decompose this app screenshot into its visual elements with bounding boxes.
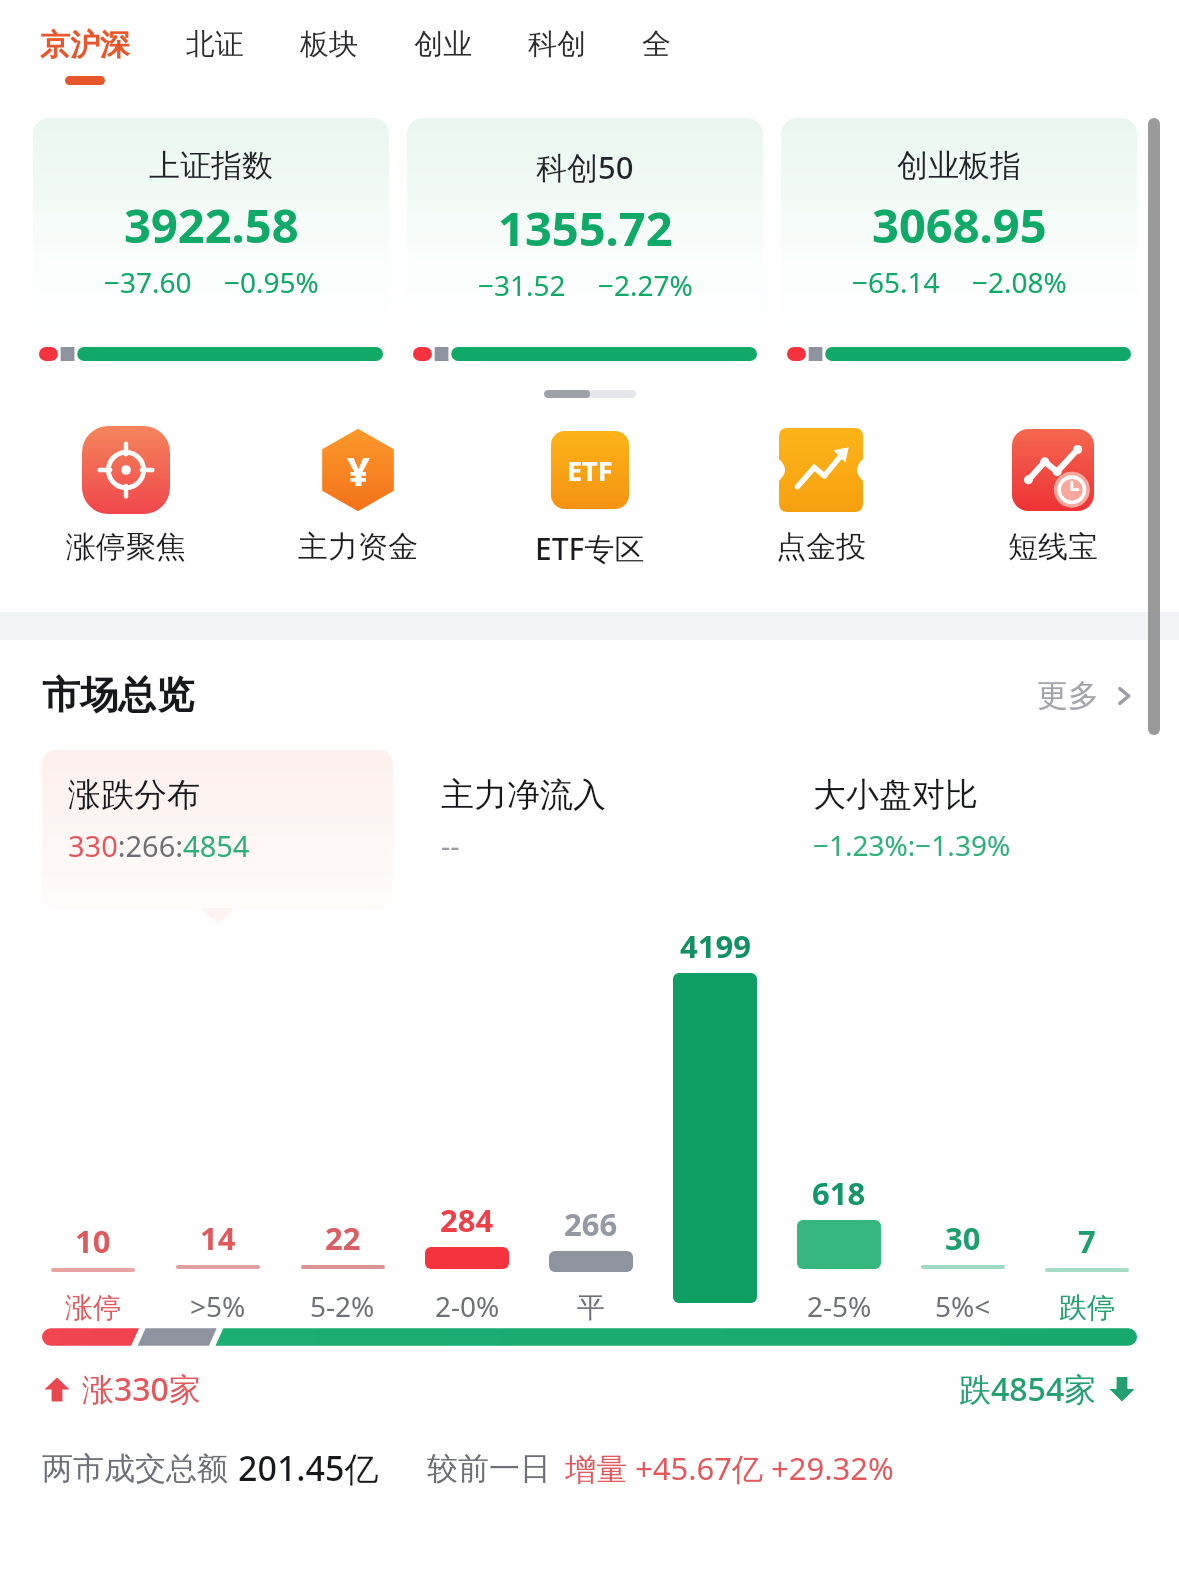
button[interactable]: 创业: [408, 0, 478, 75]
staticText: --: [441, 826, 460, 865]
staticText: 京沪深: [40, 26, 130, 64]
button[interactable]: 点金投: [721, 412, 921, 566]
button[interactable]: 板块: [294, 0, 364, 75]
button[interactable]: ETF专区: [490, 412, 690, 569]
staticText: 上证指数: [149, 146, 273, 185]
staticText: 跌4854家: [959, 1367, 1097, 1411]
staticText: ETF: [567, 452, 613, 489]
staticText: 主力净流入: [441, 774, 606, 816]
staticText: 主力资金: [298, 528, 418, 566]
staticText: 点金投: [776, 528, 866, 566]
staticText: 涨停: [65, 1290, 121, 1325]
staticText: 北证: [186, 26, 244, 63]
staticText: 30: [945, 1217, 981, 1259]
staticText: −2.08%: [972, 263, 1067, 301]
staticText: 增量 +45.67亿 +29.32%: [565, 1447, 894, 1489]
staticText: 跌停: [1059, 1290, 1115, 1325]
button[interactable]: 涨停聚焦: [26, 412, 226, 566]
other: 点金投: [779, 428, 863, 512]
button[interactable]: 京沪深: [34, 0, 136, 85]
button[interactable]: 北证: [180, 0, 250, 75]
staticText: −2.27%: [598, 266, 693, 304]
button[interactable]: 大小盘对比: [787, 750, 1137, 910]
button[interactable]: 创业板指: [781, 118, 1137, 378]
staticText: 大小盘对比: [813, 774, 978, 816]
button[interactable]: 主力资金: [258, 412, 458, 566]
button[interactable]: 主力净流入: [415, 750, 765, 910]
staticText: 5-2%: [310, 1287, 375, 1325]
staticText: 5%<: [935, 1287, 991, 1325]
staticText: ETF专区: [535, 528, 645, 569]
staticText: 创业: [414, 26, 472, 63]
button[interactable]: 上证指数: [33, 118, 389, 378]
staticText: 科创50: [536, 146, 634, 188]
staticText: 更多: [1037, 676, 1099, 715]
staticText: 2-5%: [807, 1287, 872, 1325]
staticText: −31.52: [478, 266, 566, 304]
staticText: −65.14: [852, 263, 940, 301]
staticText: 两市成交总额: [42, 1449, 228, 1488]
staticText: 14: [200, 1217, 236, 1259]
staticText: 涨330家: [82, 1367, 201, 1411]
staticText: 284: [440, 1199, 494, 1241]
staticText: >5%: [190, 1287, 246, 1325]
other: ETF专区: [551, 431, 629, 509]
button[interactable]: 涨跌分布: [42, 750, 393, 910]
staticText: 330:266:4854: [68, 826, 250, 865]
staticText: 618: [812, 1172, 866, 1214]
button[interactable]: 科创: [522, 0, 592, 75]
staticText: 平: [577, 1290, 605, 1325]
button[interactable]: 全: [636, 0, 677, 75]
staticText: 科创: [528, 26, 586, 63]
other: 主力资金: [314, 426, 402, 514]
staticText: 全: [642, 26, 671, 63]
staticText: 板块: [300, 26, 358, 63]
staticText: 短线宝: [1008, 528, 1098, 566]
staticText: 涨停聚焦: [66, 528, 186, 566]
staticText: ¥: [347, 443, 370, 497]
staticText: 201.45亿: [238, 1445, 379, 1491]
other: 短线宝: [1012, 429, 1094, 511]
staticText: 涨跌分布: [68, 774, 200, 816]
button[interactable]: 科创50: [407, 118, 763, 378]
staticText: −37.60: [104, 263, 192, 301]
staticText: 7: [1078, 1220, 1096, 1262]
staticText: 3922.58: [124, 193, 299, 257]
staticText: 1355.72: [498, 196, 673, 260]
staticText: 创业板指: [897, 146, 1021, 185]
staticText: 22: [325, 1217, 361, 1259]
button[interactable]: 短线宝: [953, 412, 1153, 566]
staticText: −0.95%: [224, 263, 319, 301]
staticText: −1.23%:−1.39%: [813, 826, 1011, 864]
staticText: 10: [75, 1220, 111, 1262]
button[interactable]: 更多: [1037, 676, 1137, 715]
staticText: 市场总览: [42, 671, 194, 719]
staticText: 266: [564, 1203, 618, 1245]
staticText: 3068.95: [872, 193, 1047, 257]
other: 涨停聚焦: [82, 426, 170, 514]
staticText: 4199: [680, 925, 751, 967]
staticText: 2-0%: [435, 1287, 500, 1325]
staticText: 较前一日: [427, 1449, 551, 1488]
